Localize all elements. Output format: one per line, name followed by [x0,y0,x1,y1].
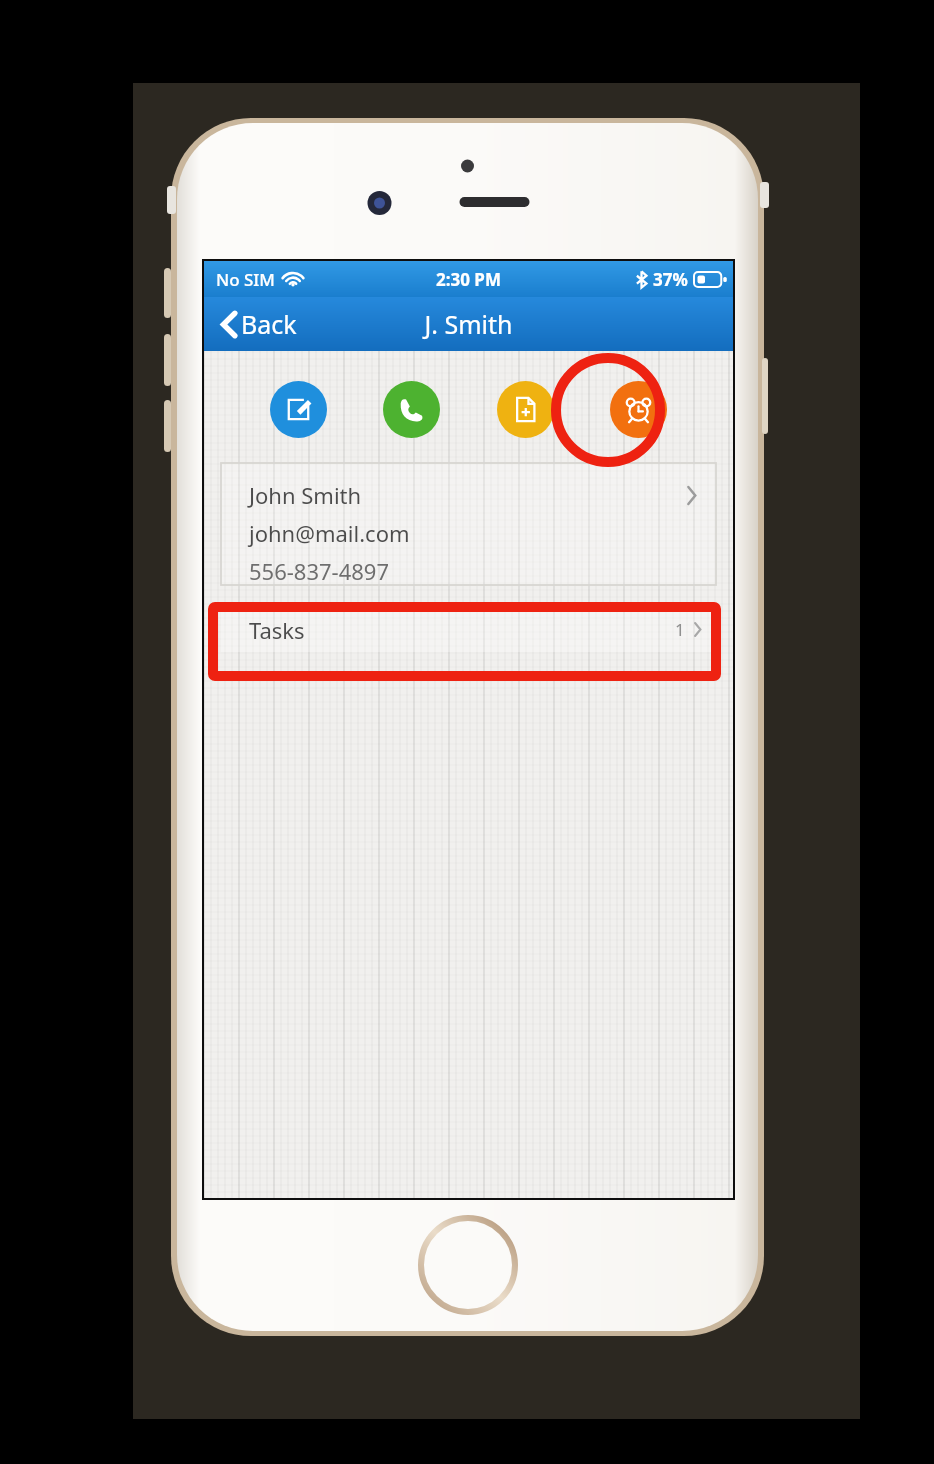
staticText: 556-837-4897 [249,556,390,585]
button[interactable]: New document [497,381,554,438]
staticText: 1 [675,618,685,641]
button[interactable]: Tasks [221,607,716,652]
button[interactable]: Call [383,381,440,438]
button[interactable]: Compose message [270,381,327,438]
staticText: 2:30 PM [436,268,501,291]
staticText: john@mail.com [249,518,410,548]
staticText: Back [241,307,297,341]
staticText: No SIM [216,268,275,291]
staticText: J. Smith [424,307,513,341]
button[interactable]: Set reminder [610,381,667,438]
button[interactable]: John Smith [221,463,716,585]
staticText: 37% [653,268,688,291]
staticText: John Smith [249,480,362,510]
button[interactable]: Back [218,299,301,349]
staticText: Tasks [249,615,305,645]
